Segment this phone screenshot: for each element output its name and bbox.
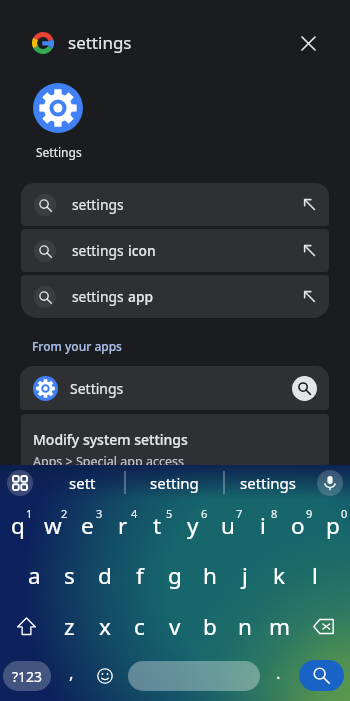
button[interactable]: sett [40,465,125,501]
staticText: h [203,560,217,591]
button[interactable]: y [175,499,210,551]
button[interactable]: Modify system settings [21,414,329,469]
button[interactable]: u [210,499,245,551]
staticText: 7 [236,506,243,521]
staticText: settings [72,195,124,214]
button[interactable]: t [140,499,175,551]
button[interactable]: Backspace [297,601,350,651]
button[interactable]: j [227,550,262,601]
button[interactable]: Voice input [317,470,343,496]
button[interactable]: e [70,499,105,551]
staticText: t [153,510,162,541]
staticText: p [326,510,340,541]
staticText: m [269,611,291,642]
button[interactable]: settings [21,183,329,226]
staticText: r [118,510,128,541]
staticText: From your apps [32,338,122,354]
button[interactable]: Settings app [33,83,83,133]
staticText: g [168,560,182,591]
staticText: Settings [70,379,124,398]
staticText: v [169,611,181,642]
button[interactable]: v [157,601,192,651]
staticText: settings [240,473,297,493]
staticText: 2 [61,506,68,521]
staticText: settings [72,241,128,260]
staticText: 8 [271,506,278,521]
button[interactable]: , [56,651,86,701]
staticText: , [69,661,74,684]
button[interactable]: Apps [7,470,33,496]
button[interactable]: b [192,601,227,651]
button[interactable]: . [264,651,292,701]
button[interactable]: z [52,601,87,651]
staticText: u [221,510,235,541]
staticText: f [136,560,144,591]
staticText: d [98,560,112,591]
staticText: . [276,661,281,684]
button[interactable]: m [262,601,297,651]
staticText: i [260,510,266,541]
button[interactable]: x [87,601,122,651]
button[interactable]: setting [125,465,224,501]
staticText: 3 [96,506,103,521]
staticText: 0 [341,506,348,521]
staticText: setting [150,473,199,493]
staticText: 6 [201,506,208,521]
staticText: w [44,510,62,541]
button[interactable]: Close [292,27,324,59]
button[interactable]: w [35,499,70,551]
staticText: x [99,611,111,642]
button[interactable]: Search in app [292,376,317,401]
button[interactable]: h [192,550,227,601]
button[interactable]: i [245,499,280,551]
button[interactable]: settings [21,275,329,318]
staticText: e [81,510,94,541]
button[interactable]: o [280,499,315,551]
staticText: 4 [131,506,138,521]
button[interactable]: g [157,550,192,601]
staticText: s [64,560,75,591]
button[interactable]: Settings [20,366,329,410]
button[interactable]: Shift [0,601,52,651]
button[interactable]: ?123 [3,661,51,691]
button[interactable]: f [122,550,157,601]
button[interactable]: p [315,499,350,551]
staticText: 9 [306,506,313,521]
staticText: y [187,510,199,541]
staticText: j [242,560,248,591]
button[interactable]: s [52,550,87,601]
staticText: a [28,560,41,591]
button[interactable]: a [17,550,52,601]
button[interactable]: r [105,499,140,551]
button[interactable]: l [297,550,332,601]
button[interactable]: settings [224,465,312,501]
button[interactable]: n [227,601,262,651]
staticText: n [238,611,252,642]
staticText: Apps > Special app access [33,453,184,469]
staticText: Modify system settings [33,430,188,449]
staticText: c [134,611,145,642]
staticText: o [291,510,305,541]
staticText: settings [72,287,128,306]
staticText: 1 [26,506,33,521]
staticText: z [64,611,75,642]
button[interactable]: k [262,550,297,601]
button[interactable]: c [122,601,157,651]
button[interactable]: Space [128,661,260,691]
staticText: settings [68,31,132,54]
button[interactable]: settings [21,229,329,272]
staticText: b [203,611,217,642]
staticText: l [312,560,318,591]
staticText: icon [128,241,156,260]
button[interactable]: q [0,499,35,551]
staticText: k [273,560,286,591]
button[interactable]: Search [299,660,344,691]
staticText: 5 [166,506,173,521]
button[interactable]: Emoji [90,651,120,701]
staticText: ?123 [12,667,43,686]
staticText: sett [69,473,96,493]
staticText: app [128,287,153,306]
staticText: q [11,510,25,541]
button[interactable]: d [87,550,122,601]
staticText: Settings [36,144,82,160]
